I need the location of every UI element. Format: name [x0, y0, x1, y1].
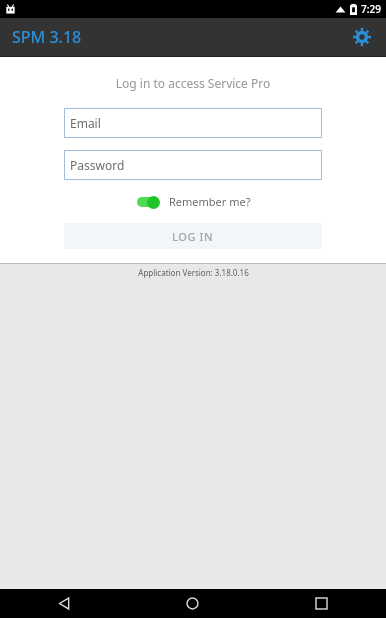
staticText: Log in to access Service Pro [0, 75, 386, 91]
staticText: LOG IN [172, 229, 214, 244]
button[interactable]: Settings [348, 23, 376, 51]
staticText: 7:29 [361, 2, 381, 16]
staticText: Application Version: 3.18.0.16 [138, 267, 249, 278]
staticText: Remember me? [169, 194, 251, 209]
button[interactable]: Email [64, 108, 322, 138]
button[interactable]: Home [128, 589, 257, 618]
button[interactable]: Remember me? [135, 194, 251, 209]
staticText: Email [70, 115, 101, 131]
staticText: SPM 3.18 [12, 26, 82, 48]
button[interactable]: Recent apps [257, 589, 386, 618]
button[interactable]: Password [64, 150, 322, 180]
button[interactable]: LOG IN [64, 223, 322, 249]
button[interactable]: Back [0, 589, 128, 618]
staticText: Password [70, 157, 125, 173]
